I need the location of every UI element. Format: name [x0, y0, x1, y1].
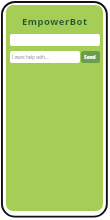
staticText: I want help with...: [12, 54, 49, 60]
button[interactable]: Send: [81, 51, 100, 63]
staticText: Send: [84, 54, 96, 61]
staticText: EmpowerBot: [22, 15, 88, 28]
button[interactable]: I want help with...: [10, 51, 80, 63]
